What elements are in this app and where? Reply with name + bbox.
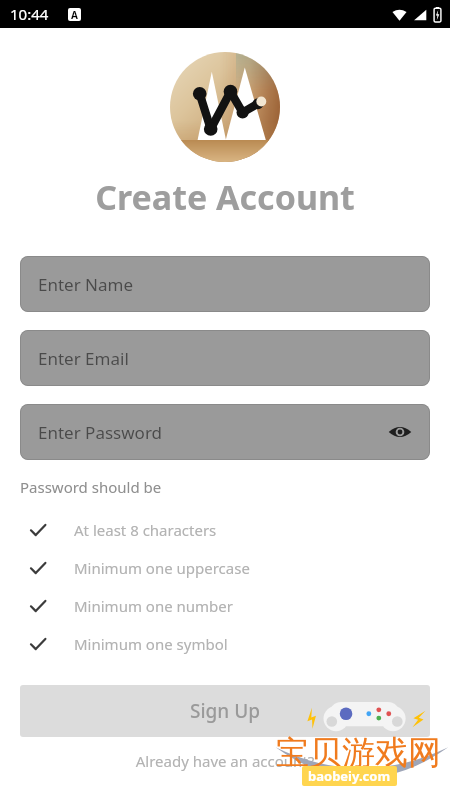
staticText: Minimum one symbol [74,634,228,654]
staticText: Enter Email [38,347,129,370]
button[interactable]: Show password [382,414,418,450]
staticText: Password should be [20,477,162,497]
staticText: 10:44 [10,4,49,24]
button[interactable]: Minimum one uppercase [0,549,450,587]
button[interactable]: Enter Name [20,256,430,312]
staticText: Already have an account? [0,751,450,771]
staticText: Sign Up [190,698,261,724]
staticText: Create Account [0,174,450,220]
staticText: Minimum one uppercase [74,558,250,578]
staticText: A [71,8,78,21]
staticText: Enter Name [38,273,134,296]
staticText: Minimum one number [74,596,233,616]
staticText: baobeiy.com [308,767,391,785]
staticText: Enter Password [38,421,163,444]
button[interactable]: Minimum one symbol [0,625,450,663]
button[interactable]: Minimum one number [0,587,450,625]
button[interactable]: At least 8 characters [0,511,450,549]
staticText: At least 8 characters [74,520,217,540]
staticText: 宝贝游戏网 [276,732,441,774]
button[interactable]: Enter Email [20,330,430,386]
button[interactable]: Enter Password [20,404,430,460]
button[interactable]: Sign Up [20,685,430,737]
